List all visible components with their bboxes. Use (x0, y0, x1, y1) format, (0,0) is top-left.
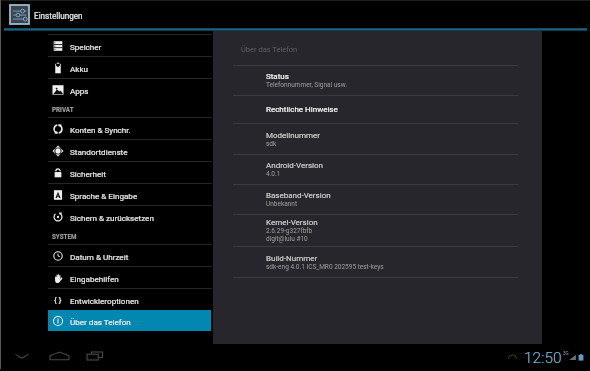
staticText: Telefonnummer, Signal usw. (266, 81, 347, 89)
staticText: { } (54, 296, 62, 305)
staticText: Einstellungen (34, 11, 83, 21)
staticText: 12:50 (524, 349, 562, 367)
button[interactable]: Rechtliche Hinweise (213, 96, 542, 123)
button[interactable]: Notifications (505, 351, 519, 365)
staticText: Über das Telefon (70, 317, 131, 326)
button[interactable]: Kernel-Version (213, 215, 542, 246)
button[interactable]: Home (47, 344, 71, 368)
staticText: Kernel-Version (266, 218, 318, 227)
staticText: Datum & Uhrzeit (70, 252, 129, 261)
staticText: Eingabehilfen (70, 274, 119, 283)
staticText: Modellnummer (266, 131, 321, 140)
button[interactable]: Über das Telefon (0, 310, 213, 331)
staticText: Build-Nummer (266, 254, 318, 263)
button[interactable]: Back (10, 344, 34, 368)
staticText: Android-Version (266, 161, 323, 170)
staticText: SYSTEM (52, 233, 77, 240)
button[interactable]: Android-Version (213, 155, 542, 184)
staticText: Akku (70, 64, 88, 73)
button[interactable]: Baseband-Version (213, 185, 542, 214)
staticText: Konten & Synchr. (70, 125, 131, 134)
staticText: sdk (266, 140, 277, 148)
staticText: Sicherheit (70, 169, 106, 178)
button[interactable]: Status (213, 66, 542, 95)
button[interactable]: Standortdienste (0, 140, 213, 161)
button[interactable]: Konten & Synchr. (0, 118, 213, 139)
button[interactable]: Speicher (0, 35, 213, 56)
staticText: Sprache & Eingabe (70, 191, 138, 200)
staticText: Über das Telefon (241, 45, 298, 54)
staticText: Status (266, 72, 289, 81)
button[interactable]: Sicherheit (0, 162, 213, 183)
button[interactable]: { } (0, 289, 213, 310)
staticText: Apps (70, 86, 89, 95)
staticText: sdk-eng 4.0.1 ICS_MR0 202595 test-keys (266, 263, 384, 271)
staticText: 4.0.1 (266, 170, 281, 178)
button[interactable]: Datum & Uhrzeit (0, 245, 213, 266)
staticText: Sichern & zurücksetzen (70, 213, 154, 222)
button[interactable]: Eingabehilfen (0, 267, 213, 288)
button[interactable]: Build-Nummer (213, 247, 542, 277)
button[interactable]: Sichern & zurücksetzen (0, 206, 213, 227)
button[interactable]: Apps (0, 79, 213, 100)
staticText: Baseband-Version (266, 191, 331, 200)
staticText: Standortdienste (70, 147, 128, 156)
staticText: Speicher (70, 42, 102, 51)
button[interactable]: Sprache & Eingabe (0, 184, 213, 205)
staticText: PRIVAT (52, 106, 74, 113)
button[interactable]: Recent apps (83, 344, 107, 368)
staticText: 3G (563, 351, 569, 356)
button[interactable]: Modellnummer (213, 124, 542, 154)
staticText: Unbekannt (266, 200, 298, 208)
staticText: Entwickleroptionen (70, 296, 139, 305)
staticText: 2.6.29-g327fbfb digit@lulu #10 (266, 227, 313, 243)
button[interactable]: Akku (0, 57, 213, 78)
button[interactable]: Einstellungen (0, 0, 590, 31)
staticText: Rechtliche Hinweise (266, 105, 338, 114)
